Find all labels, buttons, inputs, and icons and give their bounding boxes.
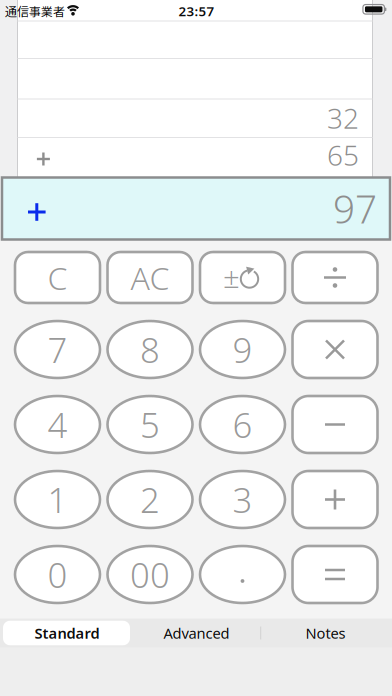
staticText: Advanced <box>163 623 229 643</box>
staticText: Standard <box>34 623 99 643</box>
staticText: 65 <box>327 136 359 174</box>
staticText: 23:57 <box>178 2 214 20</box>
staticText: 32 <box>327 99 359 137</box>
staticText: 3 <box>232 476 252 522</box>
staticText: 00 <box>130 551 170 597</box>
staticText: 9 <box>232 326 252 372</box>
staticText: 7 <box>47 326 67 372</box>
staticText: 8 <box>140 326 160 372</box>
staticText: 1 <box>47 476 67 522</box>
staticText: ± <box>223 257 240 296</box>
staticText: AC <box>130 256 169 299</box>
staticText: 4 <box>47 401 67 447</box>
staticText: 97 <box>333 183 377 234</box>
staticText: Notes <box>305 623 345 643</box>
staticText: 0 <box>47 551 67 597</box>
staticText: 通信事業者 <box>5 2 65 20</box>
staticText: C <box>47 256 67 299</box>
staticText: 6 <box>232 401 252 447</box>
staticText: 2 <box>140 476 160 522</box>
staticText: 5 <box>140 401 160 447</box>
